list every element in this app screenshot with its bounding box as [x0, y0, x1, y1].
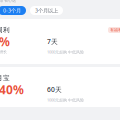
- button[interactable]: 季季稳月宝: [0, 67, 120, 107]
- staticText: 1000元起购 中低风险: [47, 97, 84, 103]
- staticText: 0-3个月: [3, 7, 21, 14]
- button[interactable]: 0-3个月: [0, 6, 26, 15]
- staticText: 成立以来年化增长: [0, 49, 7, 54]
- staticText: 1000元起购 中低风险: [47, 49, 84, 55]
- staticText: 季季周周利: [0, 26, 10, 34]
- staticText: 季季稳月宝: [0, 74, 10, 82]
- staticText: 有福利: [110, 27, 120, 32]
- button[interactable]: 3个月以上: [30, 6, 63, 15]
- staticText: 3.0340%: [0, 81, 24, 97]
- button[interactable]: 季季周周利: [0, 19, 120, 64]
- staticText: 收益稳 省心选: [0, 0, 16, 3]
- staticText: 7天: [47, 37, 58, 46]
- staticText: 60天: [47, 85, 62, 94]
- staticText: 3.71%: [0, 33, 10, 49]
- staticText: 3个月以上: [35, 7, 58, 14]
